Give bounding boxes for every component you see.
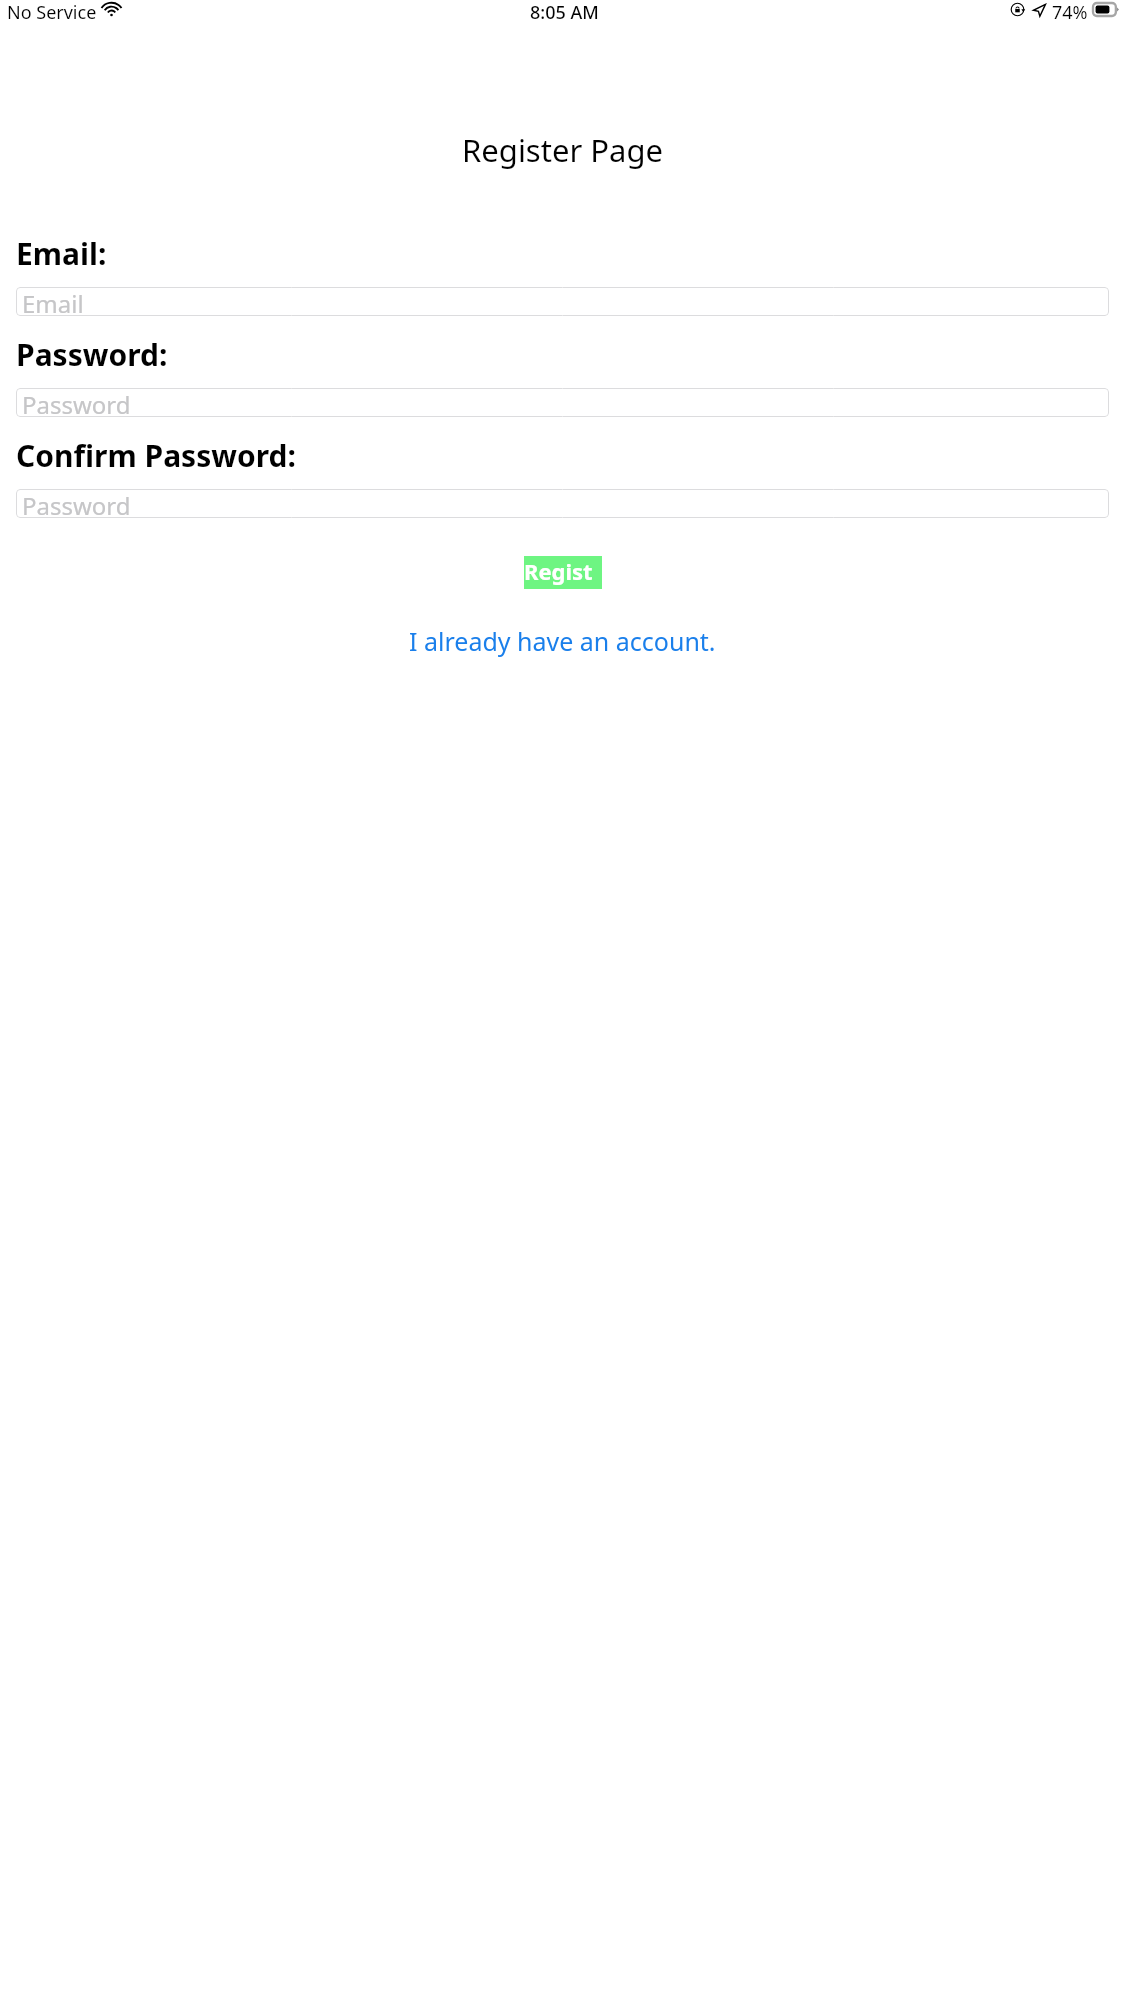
staticText: I already have an account. — [409, 624, 716, 658]
staticText: Email: — [16, 233, 107, 274]
staticText: Password: — [16, 334, 168, 375]
button[interactable]: Password — [16, 388, 1109, 417]
staticText: Email — [22, 287, 84, 316]
button[interactable]: Register — [524, 556, 602, 589]
button[interactable]: I already have an account. — [409, 624, 716, 658]
staticText: 8:05 AM — [530, 0, 599, 19]
button[interactable]: Password — [16, 489, 1109, 518]
button[interactable]: Email — [16, 287, 1109, 316]
staticText: 74% — [1052, 0, 1088, 19]
staticText: Password — [22, 489, 131, 518]
staticText: Register Page — [0, 129, 1125, 171]
staticText: Password — [22, 388, 131, 417]
other: Rotation lock — [1010, 2, 1025, 17]
staticText: Confirm Password: — [16, 435, 296, 476]
staticText: Register — [524, 556, 602, 589]
staticText: No Service — [7, 0, 97, 19]
other: Location — [1032, 3, 1046, 17]
